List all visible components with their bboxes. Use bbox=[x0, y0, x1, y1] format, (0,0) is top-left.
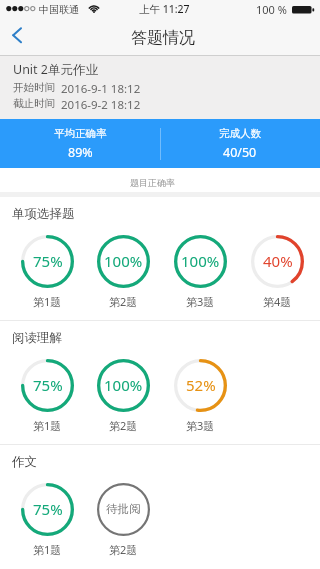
staticText: 第4题 bbox=[263, 294, 292, 309]
staticText: 100 % bbox=[256, 2, 287, 17]
staticText: 开始时间 bbox=[13, 81, 55, 94]
staticText: 第1题 bbox=[33, 294, 62, 309]
staticText: 第2题 bbox=[109, 542, 138, 557]
staticText: 第3题 bbox=[186, 294, 215, 309]
staticText: 第1题 bbox=[33, 418, 62, 433]
staticText: 75% bbox=[33, 251, 63, 271]
button[interactable]: Back bbox=[0, 20, 44, 56]
staticText: 75% bbox=[33, 375, 63, 395]
staticText: 第3题 bbox=[186, 418, 215, 433]
staticText: 截止时间 bbox=[13, 97, 55, 110]
staticText: 52% bbox=[186, 375, 216, 395]
staticText: 平均正确率 bbox=[54, 127, 107, 140]
staticText: 100% bbox=[104, 251, 143, 271]
staticText: 2016-9-1 18:12 bbox=[61, 81, 141, 97]
staticText: 题目正确率 bbox=[130, 177, 175, 188]
button[interactable]: 平均正确率 bbox=[0, 119, 160, 168]
staticText: 中国联通 bbox=[39, 3, 79, 16]
staticText: 阅读理解 bbox=[12, 330, 62, 346]
staticText: 40/50 bbox=[223, 144, 257, 161]
staticText: 第2题 bbox=[109, 294, 138, 309]
staticText: 单项选择题 bbox=[12, 206, 75, 222]
staticText: 待批阅 bbox=[106, 502, 141, 516]
staticText: 2016-9-2 18:12 bbox=[61, 97, 141, 113]
staticText: 100% bbox=[104, 375, 143, 395]
staticText: 100% bbox=[181, 251, 220, 271]
staticText: 75% bbox=[33, 499, 63, 519]
staticText: 答题情况 bbox=[131, 28, 195, 48]
staticText: Unit 2单元作业 bbox=[13, 61, 99, 78]
staticText: 89% bbox=[68, 144, 93, 161]
staticText: 作文 bbox=[12, 454, 37, 470]
staticText: 上午 11:27 bbox=[139, 2, 190, 16]
staticText: 第1题 bbox=[33, 542, 62, 557]
staticText: 完成人数 bbox=[219, 127, 261, 140]
button[interactable]: 完成人数 bbox=[160, 119, 320, 168]
staticText: 40% bbox=[263, 251, 293, 271]
staticText: 第2题 bbox=[109, 418, 138, 433]
